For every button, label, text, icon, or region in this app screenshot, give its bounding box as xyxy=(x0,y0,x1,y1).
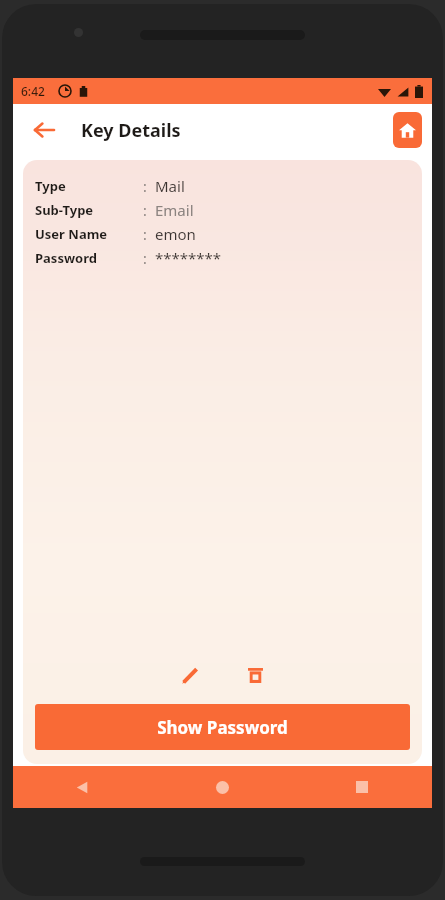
staticText: Password xyxy=(35,249,97,267)
button[interactable]: Show Password xyxy=(35,704,410,750)
staticText: User Name xyxy=(35,225,108,243)
staticText: 6:42 xyxy=(21,83,45,99)
staticText: Email xyxy=(155,200,194,220)
button[interactable]: Edit xyxy=(173,658,207,692)
staticText: : xyxy=(143,249,147,268)
button[interactable]: Back xyxy=(27,113,61,147)
button[interactable]: Home xyxy=(393,112,422,148)
staticText: : xyxy=(143,225,147,244)
staticText: emon xyxy=(155,224,196,244)
staticText: Key Details xyxy=(81,118,181,143)
button[interactable]: Back xyxy=(13,766,152,808)
staticText: Sub-Type xyxy=(35,201,94,219)
staticText: ******** xyxy=(155,248,222,268)
button[interactable]: Home xyxy=(152,766,292,808)
staticText: : xyxy=(143,201,147,220)
staticText: Type xyxy=(35,177,66,195)
staticText: Mail xyxy=(155,176,185,196)
staticText: Show Password xyxy=(157,716,288,739)
staticText: : xyxy=(143,177,147,196)
button[interactable]: Recent apps xyxy=(292,766,432,808)
button[interactable]: Delete xyxy=(238,658,272,692)
